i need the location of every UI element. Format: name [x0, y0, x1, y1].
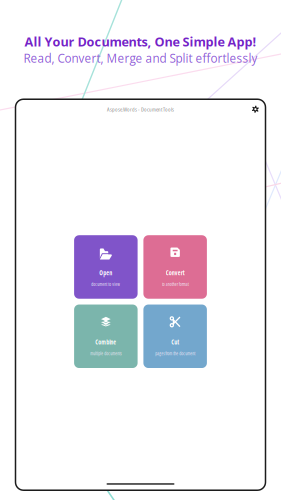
- button[interactable]: Open: [74, 235, 138, 299]
- button[interactable]: Convert: [143, 235, 207, 299]
- staticText: Convert: [166, 269, 185, 277]
- staticText: Read, Convert, Merge and Split effortles…: [23, 50, 257, 66]
- staticText: Open: [99, 269, 112, 277]
- button[interactable]: Settings: [252, 106, 259, 113]
- staticText: document to view: [91, 281, 120, 287]
- staticText: Aspose.Words - Document Tools: [107, 105, 174, 113]
- button[interactable]: Combine: [74, 304, 138, 368]
- staticText: All Your Documents, One Simple App!: [24, 33, 256, 50]
- staticText: pages from the document: [155, 351, 195, 357]
- button[interactable]: Cut: [143, 304, 207, 368]
- staticText: Cut: [171, 338, 179, 346]
- staticText: Combine: [95, 338, 116, 346]
- staticText: to another format: [162, 281, 189, 287]
- staticText: multiple documents: [90, 351, 121, 357]
